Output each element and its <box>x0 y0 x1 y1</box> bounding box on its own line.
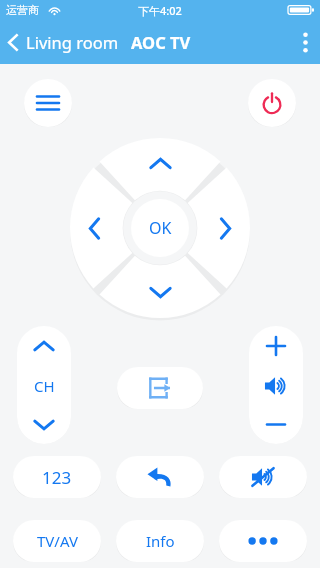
button[interactable]: Menu <box>24 79 72 127</box>
button[interactable]: Volume up <box>249 326 303 366</box>
staticText: AOC TV <box>131 31 191 53</box>
button[interactable]: Left <box>69 193 113 263</box>
button[interactable]: Input source <box>117 367 203 409</box>
button[interactable]: Up <box>125 138 195 182</box>
button[interactable]: Down <box>125 274 195 318</box>
staticText: 123 <box>42 466 72 489</box>
button[interactable]: More <box>219 520 307 562</box>
button[interactable]: Info <box>116 520 204 562</box>
staticText: Info <box>146 531 175 551</box>
staticText: Living room <box>26 31 119 53</box>
staticText: 下午4:02 <box>138 3 182 18</box>
button[interactable]: Numbers <box>13 456 101 498</box>
button[interactable]: Right <box>207 193 251 263</box>
staticText: TV/AV <box>37 531 78 551</box>
button[interactable]: Channel down <box>17 405 71 444</box>
staticText: OK <box>149 217 172 239</box>
button[interactable]: OK <box>131 199 189 257</box>
button[interactable]: More options <box>291 24 320 61</box>
button[interactable] <box>249 366 303 405</box>
button[interactable]: Back <box>116 456 204 498</box>
button[interactable]: TV/AV <box>13 520 101 562</box>
button[interactable]: Channel up <box>17 326 71 366</box>
button[interactable]: Power <box>248 79 296 127</box>
staticText: 运营商 <box>6 3 39 17</box>
button[interactable]: Living room <box>0 27 125 57</box>
button[interactable]: CH <box>17 366 71 405</box>
button[interactable]: Mute <box>219 456 307 498</box>
staticText: CH <box>34 376 55 396</box>
button[interactable]: Volume down <box>249 405 303 444</box>
